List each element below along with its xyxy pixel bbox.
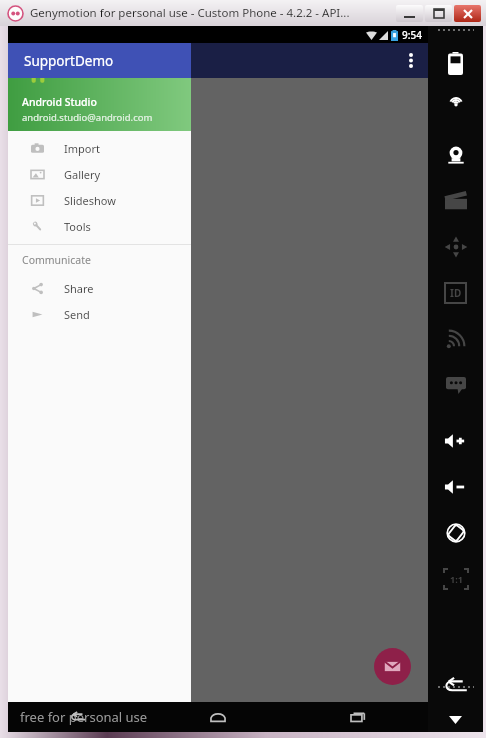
- button[interactable]: Volume up: [428, 418, 483, 464]
- staticText: free for personal use: [20, 708, 148, 726]
- button[interactable]: Home: [148, 702, 288, 732]
- button[interactable]: Minimize: [396, 5, 423, 22]
- staticText: SupportDemo: [24, 52, 114, 70]
- staticText: ID: [450, 286, 462, 300]
- button[interactable]: Battery: [428, 40, 483, 86]
- button[interactable]: Accelerometer: [428, 224, 483, 270]
- button[interactable]: Rotate: [428, 510, 483, 556]
- button[interactable]: Import: [8, 135, 191, 161]
- staticText: Import: [64, 141, 100, 156]
- staticText: Genymotion for personal use - Custom Pho…: [30, 5, 350, 21]
- button[interactable]: Gallery: [8, 161, 191, 187]
- button[interactable]: Tools: [8, 213, 191, 239]
- staticText: Tools: [64, 219, 91, 234]
- staticText: Communicate: [22, 253, 91, 267]
- button[interactable]: Send: [8, 301, 191, 327]
- button[interactable]: Close: [454, 5, 481, 22]
- staticText: 9:54: [402, 28, 422, 42]
- button[interactable]: Recents: [288, 702, 428, 732]
- button[interactable]: Compose email: [374, 648, 411, 685]
- button[interactable]: Back: [428, 662, 483, 708]
- button[interactable]: Identifiers: [428, 270, 483, 316]
- button[interactable]: GPS: [428, 86, 483, 132]
- button[interactable]: Volume down: [428, 464, 483, 510]
- button[interactable]: Slideshow: [8, 187, 191, 213]
- staticText: Share: [64, 281, 94, 296]
- staticText: android.studio@android.com: [22, 111, 153, 124]
- button[interactable]: Messaging: [428, 362, 483, 408]
- staticText: 1:1: [450, 573, 463, 585]
- button[interactable]: More: [428, 708, 483, 732]
- staticText: Gallery: [64, 167, 101, 182]
- button[interactable]: Back: [8, 702, 148, 732]
- button[interactable]: Network: [428, 316, 483, 362]
- button[interactable]: Maximize: [425, 5, 452, 22]
- button[interactable]: Video: [428, 178, 483, 224]
- staticText: Send: [64, 307, 90, 322]
- staticText: Slideshow: [64, 193, 116, 208]
- button[interactable]: Share: [8, 275, 191, 301]
- staticText: Android Studio: [22, 95, 97, 109]
- button[interactable]: Camera: [428, 132, 483, 178]
- button[interactable]: More options: [394, 43, 428, 78]
- button[interactable]: Actual size: [428, 556, 483, 602]
